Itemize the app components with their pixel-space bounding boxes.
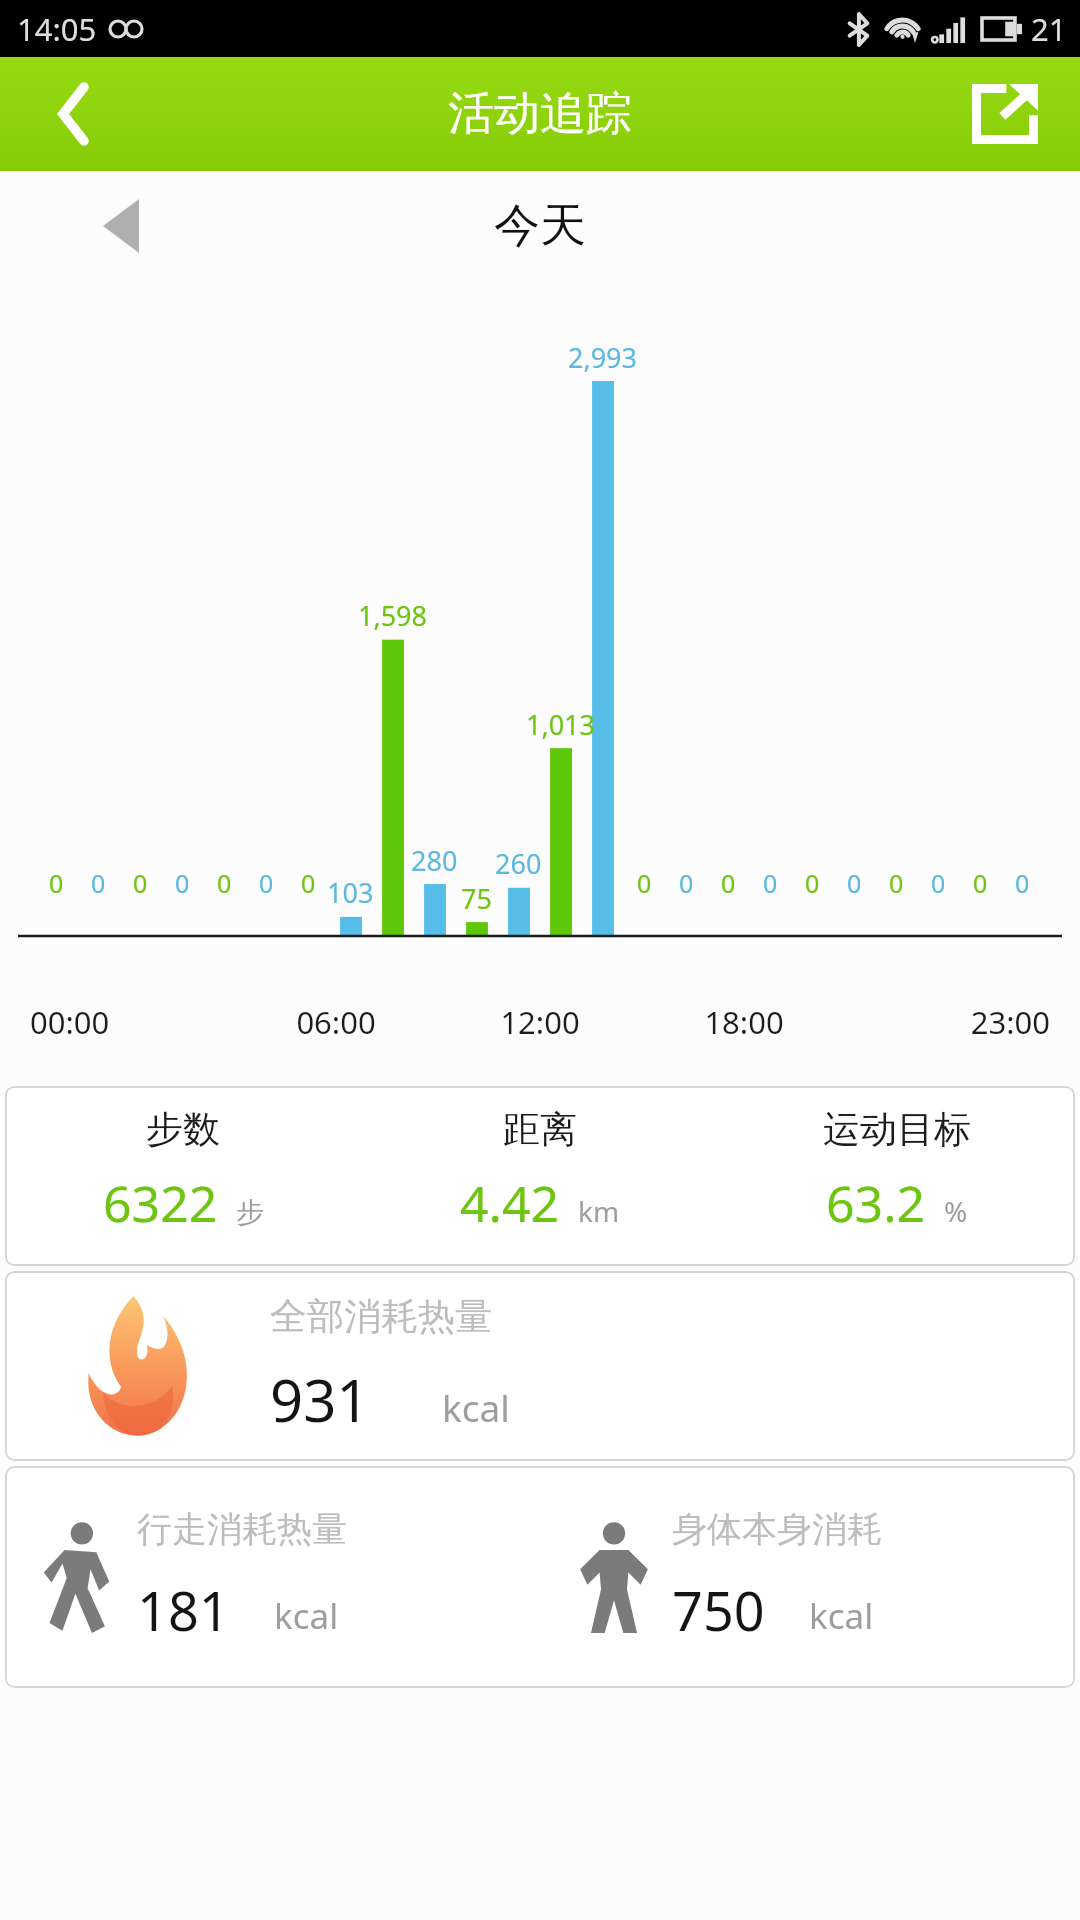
staticText: 00:00	[30, 1001, 234, 1043]
staticText: 2,993	[568, 339, 638, 376]
staticText: 18:00	[642, 1001, 846, 1043]
staticText: 06:00	[234, 1001, 438, 1043]
staticText: 0	[217, 866, 232, 900]
staticText: 4.42	[460, 1169, 560, 1237]
staticText: 0	[973, 866, 988, 900]
staticText: 14:05	[17, 8, 97, 50]
staticText: 0	[805, 866, 820, 900]
staticText: 931	[270, 1360, 370, 1439]
staticText: 280	[411, 842, 458, 879]
staticText: 63.2	[826, 1169, 926, 1237]
staticText: 0	[1015, 866, 1030, 900]
staticText: 0	[889, 866, 904, 900]
button[interactable]: Previous day	[78, 186, 164, 266]
staticText: 12:00	[438, 1001, 642, 1043]
staticText: 103	[327, 874, 374, 911]
staticText: 21	[1031, 8, 1067, 50]
staticText: 0	[175, 866, 190, 900]
staticText: 1,013	[526, 706, 596, 743]
staticText: 0	[847, 866, 862, 900]
staticText: 75	[461, 880, 492, 917]
staticText: 0	[91, 866, 106, 900]
button[interactable]: 步数	[5, 1086, 1075, 1266]
staticText: 0	[679, 866, 694, 900]
staticText: 步数	[146, 1106, 220, 1153]
staticText: km	[578, 1192, 620, 1230]
staticText: 运动目标	[823, 1106, 971, 1153]
staticText: 23:00	[846, 1001, 1050, 1043]
staticText: 活动追踪	[448, 85, 632, 143]
staticText: 0	[133, 866, 148, 900]
staticText: 身体本身消耗	[672, 1507, 882, 1551]
staticText: 0	[931, 866, 946, 900]
staticText: 1,598	[358, 597, 428, 634]
staticText: 750	[672, 1573, 765, 1647]
staticText: kcal	[274, 1592, 339, 1640]
staticText: 今天	[494, 197, 586, 255]
staticText: kcal	[809, 1592, 874, 1640]
staticText: 全部消耗热量	[270, 1293, 492, 1340]
staticText: 181	[137, 1573, 230, 1647]
staticText: 步	[236, 1195, 264, 1230]
staticText: 距离	[503, 1106, 577, 1153]
staticText: 6322	[103, 1169, 218, 1237]
staticText: 0	[721, 866, 736, 900]
button[interactable]: 全部消耗热量	[5, 1271, 1075, 1461]
staticText: 行走消耗热量	[137, 1507, 347, 1551]
button[interactable]: Back	[0, 57, 150, 171]
staticText: %	[944, 1192, 968, 1230]
staticText: 0	[259, 866, 274, 900]
staticText: 0	[763, 866, 778, 900]
staticText: kcal	[442, 1382, 510, 1432]
staticText: 0	[49, 866, 64, 900]
staticText: 0	[301, 866, 316, 900]
staticText: 260	[495, 845, 542, 882]
button[interactable]: 行走消耗热量	[5, 1466, 1075, 1688]
staticText: 0	[637, 866, 652, 900]
button[interactable]: Share	[930, 57, 1080, 171]
